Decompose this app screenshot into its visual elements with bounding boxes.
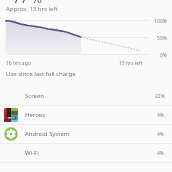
staticText: Wi-Fi bbox=[25, 149, 39, 157]
staticText: Screen bbox=[25, 92, 45, 100]
staticText: 77 % bbox=[13, 0, 43, 7]
other: Android System bbox=[4, 127, 18, 141]
staticText: Android System bbox=[25, 130, 70, 138]
button[interactable]: Wi-Fi bbox=[0, 144, 172, 162]
staticText: 16 hrs ago bbox=[6, 60, 31, 67]
staticText: 4% bbox=[157, 131, 165, 138]
button[interactable]: Android System bbox=[0, 125, 172, 143]
staticText: 4% bbox=[157, 112, 165, 119]
staticText: 0% bbox=[150, 52, 167, 59]
staticText: Use since last full charge bbox=[6, 70, 76, 78]
staticText: Heroes bbox=[25, 111, 46, 119]
staticText: 50% bbox=[150, 35, 167, 42]
other: Heroes app bbox=[4, 108, 18, 122]
button[interactable]: Heroes app bbox=[0, 106, 172, 124]
staticText: 4% bbox=[157, 150, 165, 157]
button[interactable]: Screen bbox=[0, 87, 172, 105]
staticText: 13 hrs left bbox=[119, 60, 143, 67]
staticText: 100% bbox=[150, 18, 167, 25]
staticText: 22% bbox=[155, 93, 165, 100]
staticText: Approx. 13 hrs left bbox=[6, 5, 58, 13]
